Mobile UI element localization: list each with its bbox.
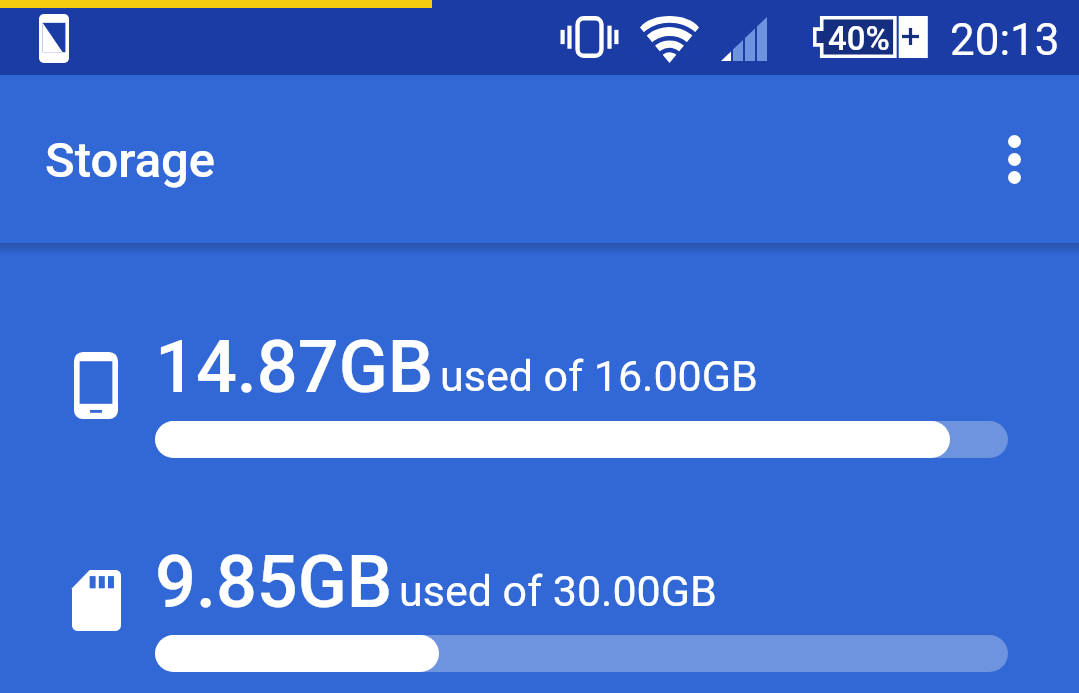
button[interactable]: 9.85GB: [0, 527, 1079, 693]
staticText: used of 30.00GB: [399, 566, 717, 616]
staticText: 14.87GB: [155, 325, 434, 409]
other: Storage notification: [39, 14, 69, 63]
other: Mobile signal: [721, 17, 767, 61]
other: Wi-Fi: [640, 12, 699, 64]
other: Battery 40 percent, charging: [813, 16, 925, 58]
staticText: 20:13: [950, 14, 1060, 66]
staticText: used of 16.00GB: [440, 351, 758, 401]
staticText: 9.85GB: [155, 540, 393, 624]
other: Vibrate mode: [562, 16, 617, 58]
button[interactable]: 14.87GB: [0, 312, 1079, 492]
staticText: 40%: [828, 19, 890, 58]
button[interactable]: More options: [978, 123, 1050, 195]
staticText: Storage: [45, 132, 216, 189]
